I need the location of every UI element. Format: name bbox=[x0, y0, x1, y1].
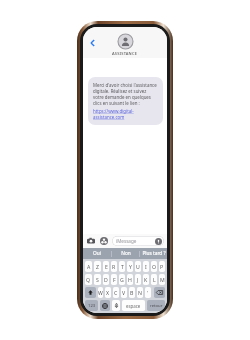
staticText: C bbox=[114, 289, 118, 296]
button[interactable]: N bbox=[137, 287, 143, 298]
staticText: ' bbox=[147, 289, 149, 296]
button[interactable]: Camera bbox=[86, 236, 96, 246]
staticText: H bbox=[128, 276, 132, 283]
button[interactable]: G bbox=[119, 274, 125, 285]
button[interactable]: D bbox=[103, 274, 109, 285]
staticText: E bbox=[105, 263, 108, 270]
staticText: F bbox=[113, 276, 116, 283]
button[interactable]: espace bbox=[122, 300, 145, 311]
button[interactable]: 123 bbox=[85, 300, 98, 311]
button[interactable]: R bbox=[111, 261, 117, 272]
button[interactable]: I bbox=[143, 261, 149, 272]
staticText: W bbox=[98, 289, 103, 296]
button[interactable]: U bbox=[135, 261, 141, 272]
button[interactable]: ASSISTANCE bbox=[112, 30, 138, 56]
staticText: Y bbox=[129, 263, 132, 270]
staticText: Plus tard ? bbox=[142, 250, 166, 257]
staticText: A bbox=[87, 263, 91, 270]
staticText: N bbox=[138, 289, 142, 296]
staticText: 123 bbox=[88, 303, 96, 309]
button[interactable]: Q bbox=[85, 274, 92, 285]
staticText: D bbox=[104, 276, 108, 283]
button[interactable]: H bbox=[127, 274, 133, 285]
staticText: L bbox=[153, 276, 156, 283]
button[interactable]: Key bbox=[154, 287, 165, 298]
button[interactable]: Apps bbox=[99, 236, 109, 246]
staticText: M bbox=[160, 276, 165, 283]
button[interactable]: O bbox=[151, 261, 157, 272]
button[interactable]: T bbox=[119, 261, 125, 272]
button[interactable]: V bbox=[121, 287, 127, 298]
button[interactable]: ' bbox=[145, 287, 151, 298]
button[interactable]: Z bbox=[94, 261, 101, 272]
button[interactable]: L bbox=[151, 274, 157, 285]
staticText: G bbox=[120, 276, 124, 283]
button[interactable]: S bbox=[94, 274, 101, 285]
staticText: S bbox=[96, 276, 99, 283]
staticText: T bbox=[121, 263, 124, 270]
button[interactable]: A bbox=[85, 261, 92, 272]
staticText: R bbox=[112, 263, 116, 270]
button[interactable]: Oui bbox=[83, 248, 111, 259]
staticText: P bbox=[160, 263, 164, 270]
button[interactable]: Non bbox=[112, 248, 139, 259]
button[interactable]: C bbox=[113, 287, 119, 298]
staticText: retour bbox=[150, 303, 163, 309]
button[interactable]: P bbox=[159, 261, 165, 272]
staticText: Z bbox=[96, 263, 99, 270]
button[interactable]: retour bbox=[147, 300, 165, 311]
staticText: K bbox=[144, 276, 148, 283]
staticText: B bbox=[130, 289, 134, 296]
staticText: V bbox=[122, 289, 126, 296]
staticText: Merci d'avoir choisi l'assistance digita… bbox=[93, 82, 158, 106]
button[interactable]: Back bbox=[86, 36, 100, 50]
staticText: iMessage bbox=[116, 238, 137, 244]
button[interactable]: Dictate bbox=[112, 300, 120, 311]
staticText: O bbox=[152, 263, 157, 270]
staticText: espace bbox=[126, 303, 141, 309]
button[interactable]: M bbox=[159, 274, 165, 285]
button[interactable]: Plus tard ? bbox=[140, 248, 167, 259]
button[interactable]: B bbox=[129, 287, 135, 298]
button[interactable]: F bbox=[111, 274, 117, 285]
staticText: U bbox=[136, 263, 140, 270]
button[interactable]: iMessage bbox=[112, 236, 164, 246]
button[interactable]: Audio message bbox=[154, 237, 162, 245]
button[interactable]: Y bbox=[127, 261, 133, 272]
staticText: Non bbox=[121, 250, 131, 257]
staticText: https://www.digital-assistance.com bbox=[93, 108, 158, 120]
button[interactable]: J bbox=[135, 274, 141, 285]
button[interactable]: X bbox=[105, 287, 111, 298]
button[interactable]: K bbox=[143, 274, 149, 285]
button[interactable]: Merci d'avoir choisi l'assistance digita… bbox=[88, 77, 163, 125]
staticText: ASSISTANCE bbox=[112, 51, 138, 56]
staticText: Q bbox=[86, 276, 91, 283]
staticText: X bbox=[106, 289, 110, 296]
button[interactable]: E bbox=[103, 261, 109, 272]
button[interactable]: Key bbox=[100, 300, 110, 311]
staticText: Oui bbox=[93, 250, 101, 257]
button[interactable]: W bbox=[98, 287, 103, 298]
staticText: J bbox=[137, 276, 139, 283]
button[interactable]: Key bbox=[85, 287, 96, 298]
staticText: I bbox=[145, 263, 147, 270]
